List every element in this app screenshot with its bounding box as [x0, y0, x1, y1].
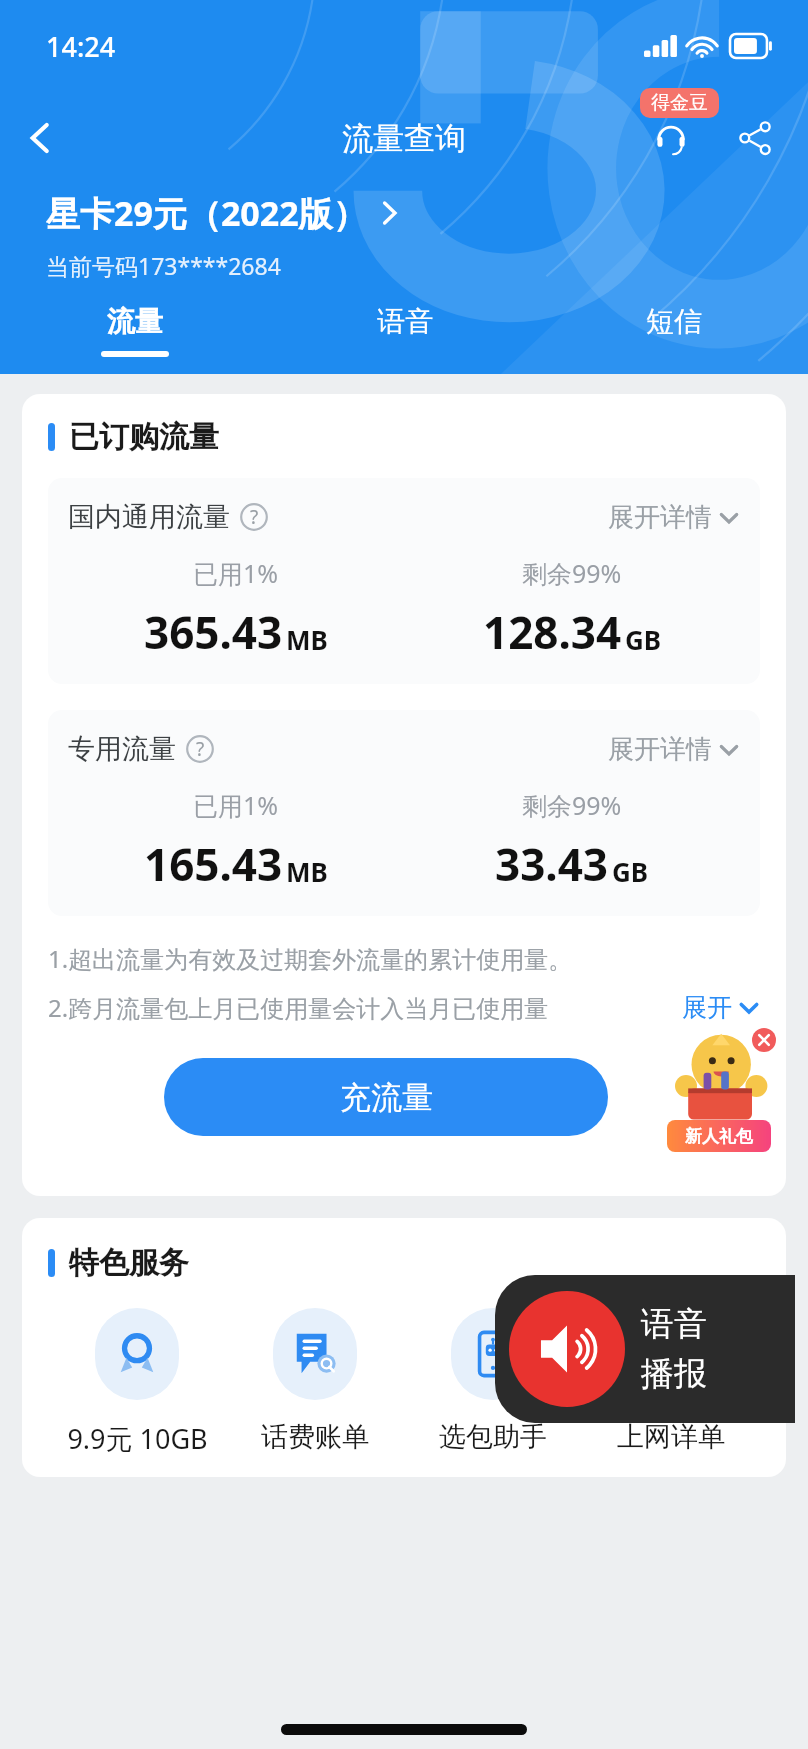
- button[interactable]: 9.9元 10GB: [48, 1308, 226, 1457]
- button[interactable]: Back: [10, 107, 72, 169]
- staticText: 165.43: [144, 834, 283, 894]
- button[interactable]: 语音: [495, 1275, 795, 1423]
- staticText: 展开: [682, 992, 732, 1023]
- button[interactable]: 短信: [539, 300, 808, 361]
- staticText: 2.跨月流量包上月已使用量会计入当月已使用量: [48, 991, 549, 1024]
- staticText: 新人礼包: [685, 1126, 753, 1147]
- staticText: MB: [286, 622, 328, 657]
- staticText: 得金豆: [651, 91, 708, 115]
- staticText: 当前号码173****2684: [46, 250, 281, 281]
- staticText: 国内通用流量: [68, 500, 230, 534]
- button[interactable]: 流量: [0, 300, 270, 361]
- staticText: 剩余99%: [522, 556, 622, 590]
- staticText: 已用1%: [193, 788, 279, 822]
- button[interactable]: 新人礼包: [664, 1032, 774, 1152]
- button[interactable]: 充流量: [164, 1058, 608, 1136]
- staticText: 上网详单: [617, 1420, 725, 1454]
- staticText: 特色服务: [69, 1244, 189, 1282]
- staticText: MB: [286, 854, 328, 889]
- staticText: 语音: [377, 304, 433, 339]
- staticText: 短信: [646, 304, 702, 339]
- button[interactable]: 专用流量: [48, 710, 760, 916]
- staticText: ?: [250, 504, 259, 530]
- staticText: 已订购流量: [69, 418, 219, 456]
- staticText: 展开详情: [608, 501, 712, 534]
- staticText: 128.34: [483, 602, 622, 662]
- button[interactable]: 展开详情: [608, 501, 740, 534]
- button[interactable]: Share: [724, 107, 786, 169]
- staticText: 选包助手: [439, 1420, 547, 1454]
- staticText: 剩余99%: [522, 788, 622, 822]
- staticText: 33.43: [495, 834, 609, 894]
- button[interactable]: 选包助手: [404, 1308, 582, 1454]
- staticText: 已用1%: [193, 556, 279, 590]
- button[interactable]: 展开详情: [608, 733, 740, 766]
- staticText: 1.超出流量为有效及过期套外流量的累计使用量。: [48, 942, 573, 975]
- staticText: 9.9元 10GB: [67, 1420, 208, 1457]
- staticText: 流量: [107, 304, 163, 339]
- staticText: 14:24: [46, 28, 116, 65]
- button[interactable]: 星卡29元（2022版）: [46, 190, 399, 236]
- button[interactable]: 话费账单: [226, 1308, 404, 1454]
- staticText: 话费账单: [261, 1420, 369, 1454]
- button[interactable]: 国内通用流量: [48, 478, 760, 684]
- staticText: 365.43: [144, 602, 283, 662]
- staticText: 语音: [641, 1303, 707, 1345]
- staticText: 专用流量: [68, 732, 176, 766]
- staticText: 展开详情: [608, 733, 712, 766]
- staticText: GB: [612, 854, 649, 889]
- staticText: ?: [196, 736, 205, 762]
- staticText: 充流量: [340, 1078, 433, 1117]
- button[interactable]: Close ad: [752, 1028, 776, 1052]
- button[interactable]: 语音: [270, 300, 539, 361]
- staticText: 星卡29元（2022版）: [46, 190, 367, 236]
- staticText: 播报: [641, 1353, 707, 1395]
- button[interactable]: 上网详单: [582, 1308, 760, 1454]
- button[interactable]: Customer service: [640, 107, 702, 169]
- button[interactable]: 得金豆: [640, 88, 719, 118]
- staticText: 流量查询: [342, 119, 466, 158]
- button[interactable]: 展开: [676, 992, 760, 1023]
- staticText: GB: [625, 622, 662, 657]
